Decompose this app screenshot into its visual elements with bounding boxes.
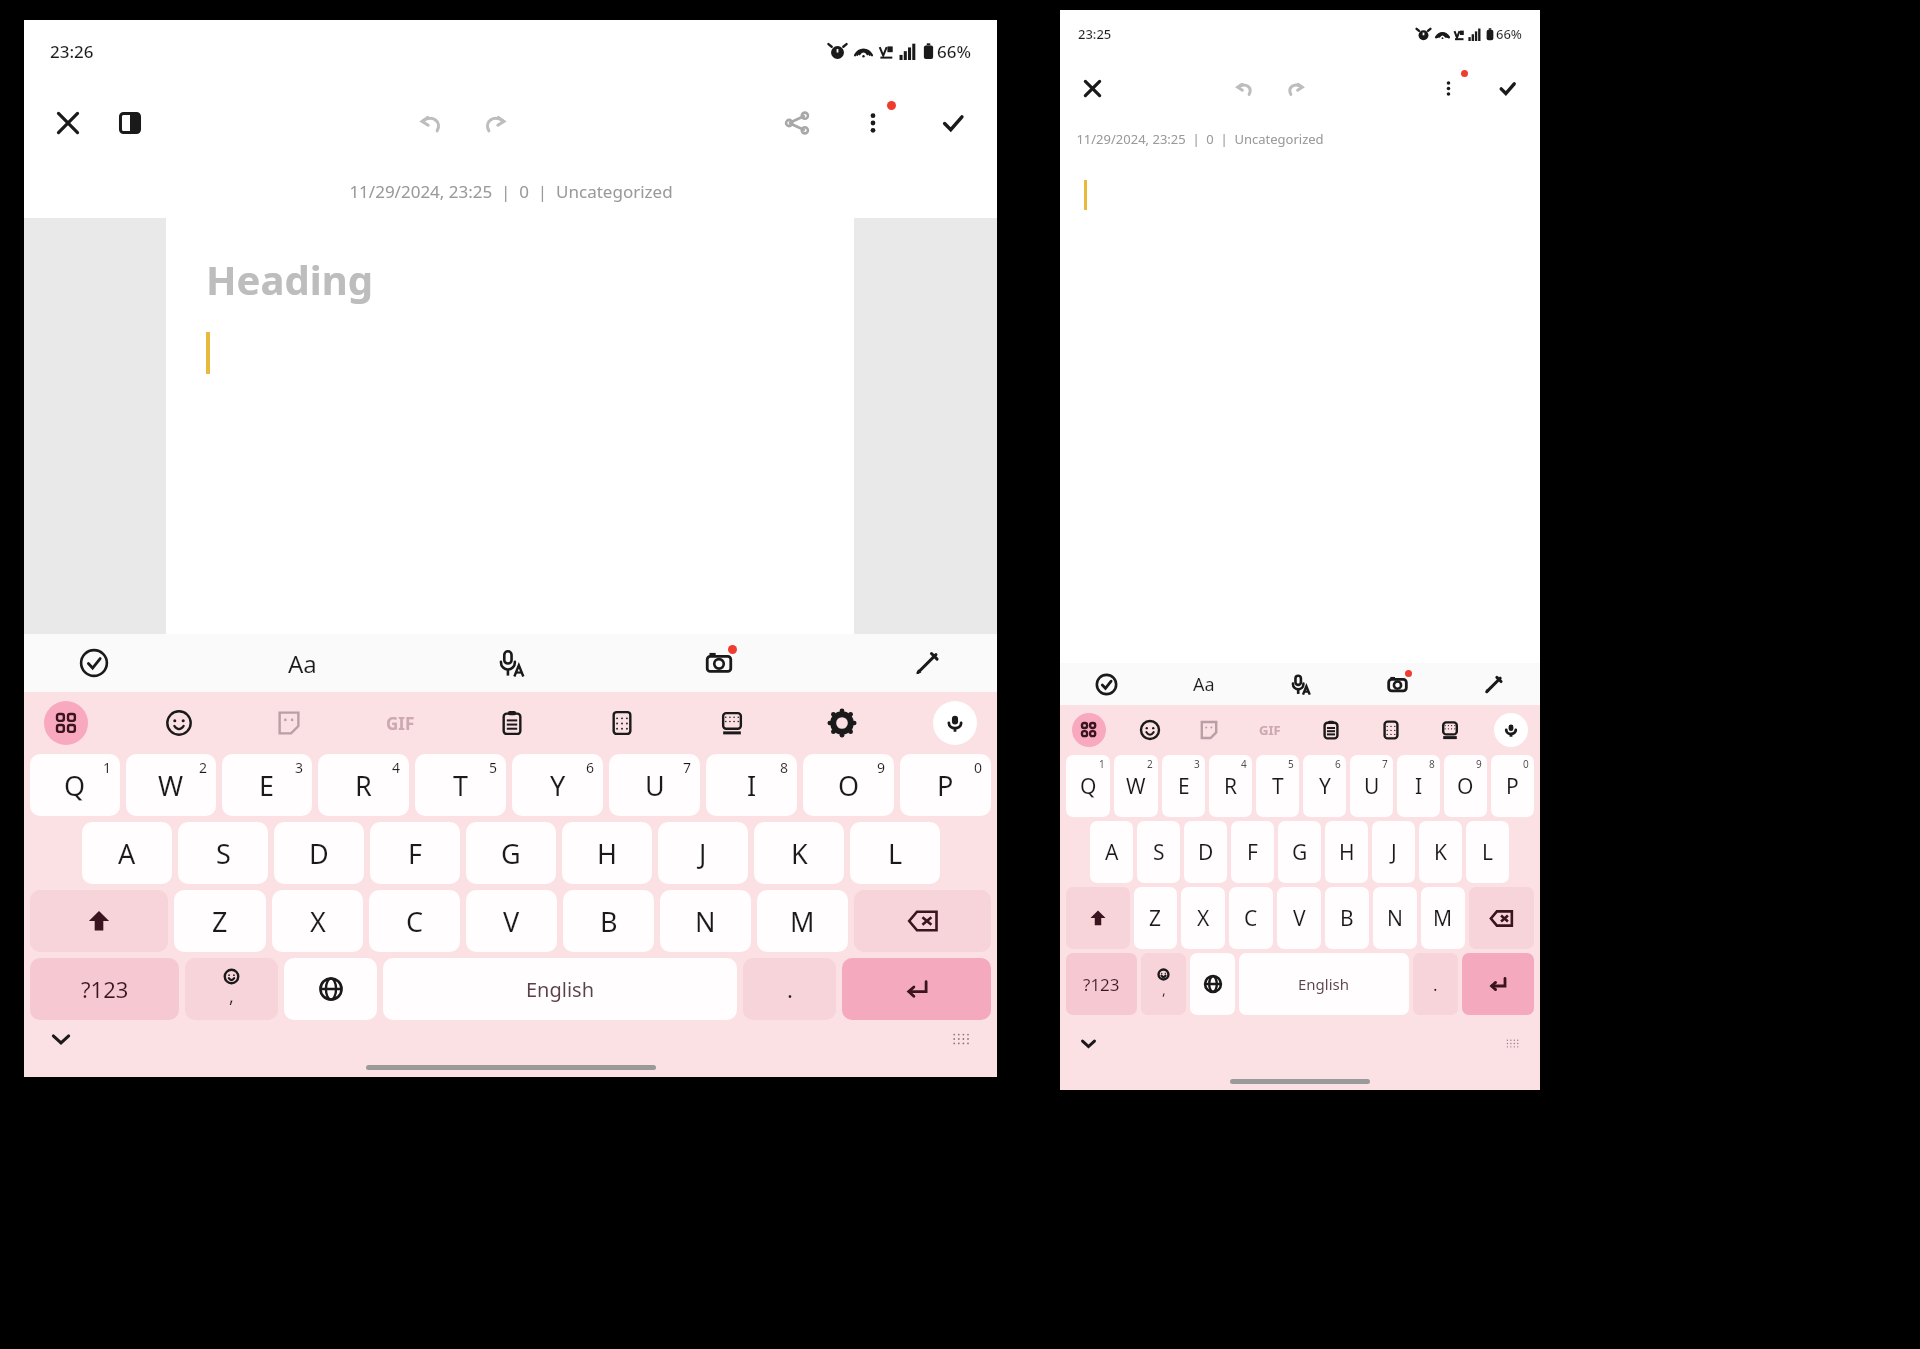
button[interactable]: Voice input xyxy=(1284,668,1317,701)
button[interactable]: Clipboard xyxy=(1315,714,1347,746)
button[interactable]: E xyxy=(1162,755,1205,817)
button[interactable]: L xyxy=(1466,821,1509,883)
button[interactable]: Space xyxy=(383,958,737,1020)
button[interactable]: P xyxy=(1491,755,1534,817)
button[interactable]: F xyxy=(370,822,460,884)
button[interactable]: I xyxy=(706,754,797,816)
button[interactable]: Stickers xyxy=(1193,714,1225,746)
button[interactable]: J xyxy=(1372,821,1415,883)
button[interactable]: O xyxy=(803,754,894,816)
button[interactable]: B xyxy=(1325,887,1369,949)
button[interactable]: Symbols xyxy=(1066,953,1137,1015)
button[interactable]: S xyxy=(1137,821,1180,883)
button[interactable]: Redo xyxy=(1279,72,1312,105)
button[interactable]: Save xyxy=(933,103,973,143)
button[interactable]: Change language xyxy=(284,958,377,1020)
button[interactable]: R xyxy=(318,754,409,816)
button[interactable]: GIF xyxy=(1253,715,1287,745)
button[interactable]: Voice typing xyxy=(933,701,977,745)
button[interactable]: Period xyxy=(1413,953,1458,1015)
button[interactable]: Y xyxy=(512,754,603,816)
button[interactable]: F xyxy=(1231,821,1274,883)
button[interactable]: Checklist xyxy=(74,643,114,683)
button[interactable]: P xyxy=(900,754,991,816)
button[interactable]: Q xyxy=(30,754,120,816)
button[interactable]: Z xyxy=(1134,887,1177,949)
button[interactable]: J xyxy=(658,822,748,884)
button[interactable]: M xyxy=(757,890,848,952)
button[interactable]: Voice input xyxy=(491,643,531,683)
button[interactable]: T xyxy=(1256,755,1299,817)
button[interactable]: Voice typing xyxy=(1494,713,1528,747)
button[interactable]: K xyxy=(754,822,844,884)
button[interactable]: Y xyxy=(1303,755,1346,817)
button[interactable]: D xyxy=(274,822,364,884)
button[interactable]: Camera xyxy=(1381,668,1414,701)
button[interactable]: Z xyxy=(174,890,266,952)
button[interactable]: Draw xyxy=(907,643,947,683)
button[interactable]: W xyxy=(1114,755,1158,817)
button[interactable]: Shift xyxy=(1066,887,1130,949)
button[interactable]: Backspace xyxy=(1469,887,1534,949)
button[interactable]: R xyxy=(1209,755,1252,817)
button[interactable]: Enter xyxy=(842,958,991,1020)
button[interactable]: GIF xyxy=(380,706,421,741)
button[interactable]: Symbols xyxy=(30,958,179,1020)
button[interactable]: C xyxy=(369,890,460,952)
button[interactable]: Toolbar xyxy=(44,701,88,745)
button[interactable]: K xyxy=(1419,821,1462,883)
button[interactable]: Undo xyxy=(1228,72,1261,105)
button[interactable]: Resize keyboard xyxy=(1499,1030,1526,1057)
button[interactable]: Number pad xyxy=(603,704,641,742)
button[interactable]: Redo xyxy=(475,103,515,143)
button[interactable]: Close xyxy=(48,103,88,143)
button[interactable]: Enter xyxy=(1462,953,1534,1015)
button[interactable]: Shift xyxy=(30,890,168,952)
button[interactable]: O xyxy=(1444,755,1487,817)
button[interactable]: L xyxy=(850,822,940,884)
button[interactable]: Space xyxy=(1239,953,1409,1015)
button[interactable]: A xyxy=(82,822,172,884)
button[interactable]: Backspace xyxy=(854,890,991,952)
button[interactable]: V xyxy=(466,890,557,952)
button[interactable]: H xyxy=(1325,821,1368,883)
button[interactable]: Emoji and comma xyxy=(185,958,278,1020)
button[interactable]: W xyxy=(126,754,216,816)
button[interactable]: Aa xyxy=(282,641,323,686)
button[interactable]: Q xyxy=(1066,755,1110,817)
button[interactable]: More options xyxy=(853,103,893,143)
button[interactable]: M xyxy=(1421,887,1465,949)
button[interactable]: N xyxy=(660,890,751,952)
button[interactable]: V xyxy=(1277,887,1321,949)
button[interactable]: Aa xyxy=(1187,666,1221,703)
button[interactable]: H xyxy=(562,822,652,884)
button[interactable]: Draw xyxy=(1477,668,1510,701)
button[interactable]: U xyxy=(609,754,700,816)
button[interactable]: Clipboard xyxy=(493,704,531,742)
button[interactable]: X xyxy=(1181,887,1225,949)
button[interactable]: A xyxy=(1090,821,1133,883)
button[interactable]: Close xyxy=(1076,72,1109,105)
button[interactable]: Checklist xyxy=(1090,668,1123,701)
button[interactable]: Resize keyboard xyxy=(945,1023,977,1055)
button[interactable]: Emoji xyxy=(1134,714,1166,746)
button[interactable]: Emoji xyxy=(160,704,198,742)
button[interactable]: D xyxy=(1184,821,1227,883)
button[interactable]: S xyxy=(178,822,268,884)
button[interactable]: Camera xyxy=(699,643,739,683)
button[interactable]: I xyxy=(1397,755,1440,817)
button[interactable]: Emoji and comma xyxy=(1141,953,1186,1015)
button[interactable]: N xyxy=(1373,887,1417,949)
button[interactable]: Settings xyxy=(823,704,861,742)
button[interactable]: Keyboard modes xyxy=(1434,714,1466,746)
button[interactable]: E xyxy=(222,754,312,816)
button[interactable]: U xyxy=(1350,755,1393,817)
button[interactable]: Stickers xyxy=(270,704,308,742)
button[interactable]: T xyxy=(415,754,506,816)
button[interactable]: Number pad xyxy=(1375,714,1407,746)
button[interactable]: Save xyxy=(1491,72,1524,105)
button[interactable]: G xyxy=(466,822,556,884)
button[interactable]: Change language xyxy=(1190,953,1235,1015)
button[interactable]: G xyxy=(1278,821,1321,883)
button[interactable]: X xyxy=(272,890,363,952)
